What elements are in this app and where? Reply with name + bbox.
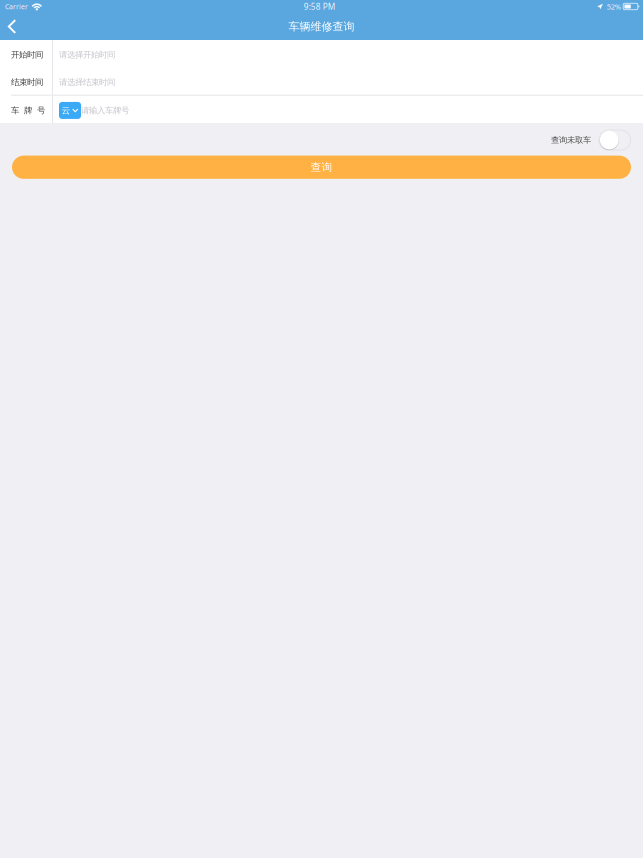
staticText: 结束时间 — [11, 77, 43, 87]
staticText: 请输入车牌号 — [81, 105, 129, 116]
staticText: 9:58 PM — [304, 1, 335, 12]
button[interactable]: 查询 — [12, 156, 631, 179]
button[interactable]: 选择省份 — [59, 102, 81, 119]
staticText: 查询未取车 — [551, 135, 591, 145]
staticText: 云 — [61, 105, 70, 116]
button[interactable]: 结束时间 — [0, 67, 643, 95]
button[interactable]: 开始时间 — [0, 40, 643, 67]
staticText: 52% — [607, 1, 621, 12]
staticText: Carrier — [5, 2, 28, 11]
staticText: 请选择开始时间 — [59, 49, 115, 60]
staticText: 车牌号 — [11, 105, 45, 116]
staticText: 查询 — [310, 160, 332, 174]
staticText: 请选择结束时间 — [59, 77, 115, 87]
button[interactable]: Back — [0, 13, 24, 40]
button[interactable]: 查询未取车 — [599, 130, 631, 150]
staticText: 开始时间 — [11, 49, 43, 60]
staticText: 车辆维修查询 — [288, 19, 354, 33]
